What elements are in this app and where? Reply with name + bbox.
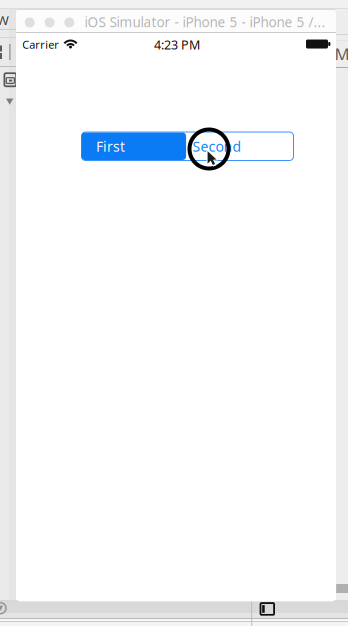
button[interactable]: Second (187, 132, 293, 160)
staticText: Carrier (22, 37, 59, 52)
staticText: 4:23 PM (154, 36, 200, 53)
staticText: Second (193, 137, 242, 156)
staticText: W (0, 11, 8, 29)
staticText: M (334, 43, 348, 65)
button[interactable]: First (81, 132, 187, 160)
staticText: iOS Simulator - iPhone 5 - iPhone 5 /... (84, 13, 325, 31)
staticText: First (96, 137, 125, 156)
